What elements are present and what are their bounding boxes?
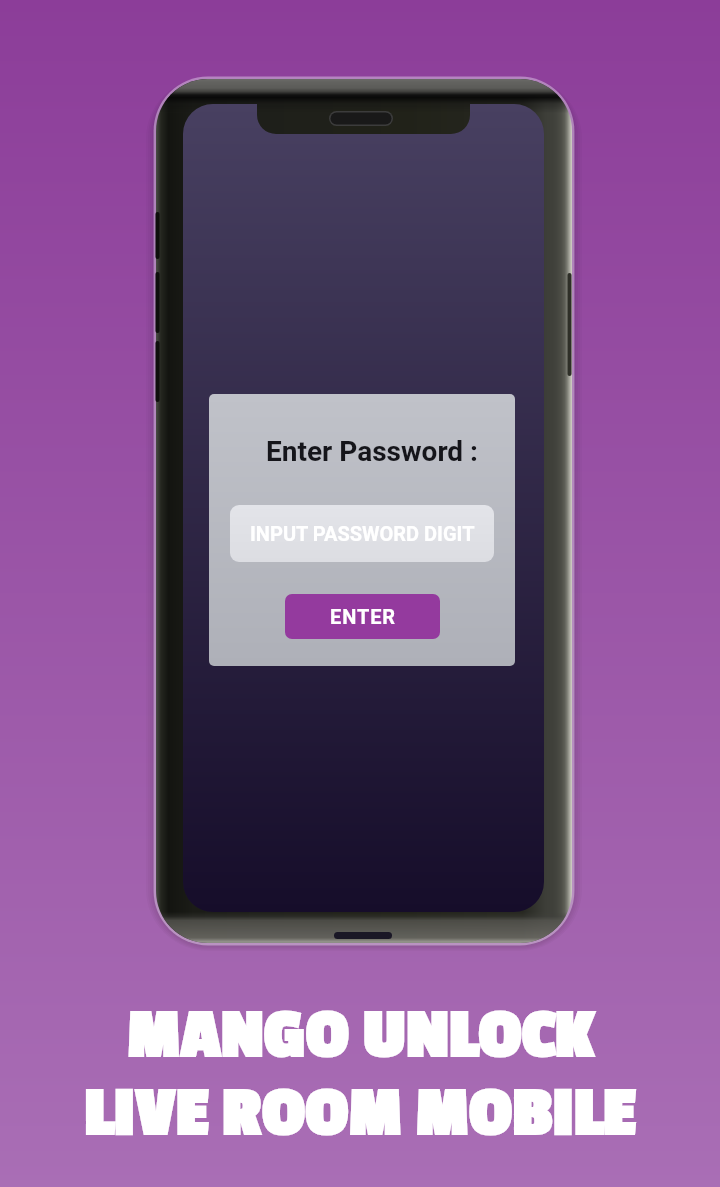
staticText: INPUT PASSWORD DIGIT <box>250 522 475 545</box>
staticText: Enter Password : <box>266 435 479 468</box>
staticText: MANGO UNLOCK <box>127 997 594 1075</box>
staticText: ENTER <box>330 605 396 628</box>
staticText: LIVE ROOM MOBILE <box>84 1075 636 1153</box>
button[interactable]: ENTER <box>285 594 440 639</box>
button[interactable]: Input password digit <box>230 505 494 562</box>
